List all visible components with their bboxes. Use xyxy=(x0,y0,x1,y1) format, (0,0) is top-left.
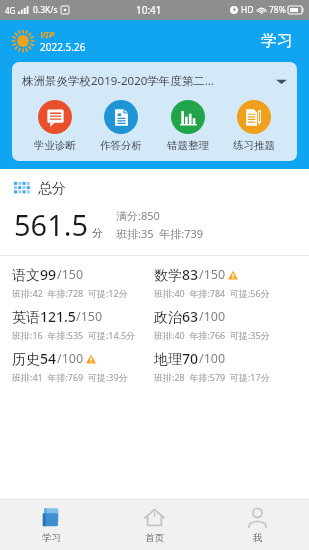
button[interactable]: 学习 xyxy=(0,500,103,550)
staticText: 561.5 xyxy=(14,205,89,244)
staticText: /150 xyxy=(57,266,84,283)
button[interactable]: 地理70 xyxy=(154,349,297,383)
staticText: VIP xyxy=(40,28,55,40)
staticText: 10:41 xyxy=(136,3,162,17)
button[interactable]: 数学83 xyxy=(154,265,297,299)
staticText: 班排:28 年排:579 可提:17分 xyxy=(154,371,270,383)
button[interactable]: 历史54 xyxy=(12,349,154,383)
button[interactable]: 学业诊断 xyxy=(31,100,79,152)
button[interactable]: 作答分析 xyxy=(97,100,145,152)
staticText: 班排:16 年排:535 可提:14.5分 xyxy=(12,329,136,341)
staticText: 班排:42 年排:728 可提:12分 xyxy=(12,287,128,299)
staticText: 班排:35 年排:739 xyxy=(116,226,204,241)
button[interactable]: 练习推题 xyxy=(230,100,278,152)
staticText: 满分:850 xyxy=(116,208,160,223)
staticText: 0.3K/s xyxy=(33,4,58,16)
staticText: 政治63 xyxy=(154,307,199,326)
staticText: 历史54 xyxy=(12,349,57,368)
staticText: /100 xyxy=(57,350,84,367)
staticText: 语文99 xyxy=(12,265,57,284)
staticText: /100 xyxy=(199,308,226,325)
staticText: 总分 xyxy=(38,180,66,198)
staticText: 分 xyxy=(92,226,103,240)
staticText: 学习 xyxy=(261,31,293,51)
staticText: /100 xyxy=(199,350,226,367)
button[interactable]: 错题整理 xyxy=(164,100,212,152)
button[interactable]: 我 xyxy=(206,500,309,550)
staticText: 错题整理 xyxy=(167,139,209,152)
staticText: HD xyxy=(241,4,254,16)
staticText: 地理70 xyxy=(154,349,199,368)
staticText: 练习推题 xyxy=(233,139,275,152)
staticText: 78% xyxy=(269,4,286,16)
staticText: 作答分析 xyxy=(100,139,142,152)
button[interactable]: 政治63 xyxy=(154,307,297,341)
staticText: /150 xyxy=(76,308,103,325)
button[interactable]: 首页 xyxy=(103,500,206,550)
staticText: 我 xyxy=(253,532,263,544)
staticText: 首页 xyxy=(145,532,164,544)
staticText: 班排:41 年排:769 可提:39分 xyxy=(12,371,128,383)
staticText: 株洲景炎学校2019-2020学年度第二… xyxy=(22,73,214,89)
button[interactable]: VIP xyxy=(12,28,86,54)
staticText: 学业诊断 xyxy=(34,139,76,152)
staticText: 英语121.5 xyxy=(12,307,76,326)
staticText: 2022.5.26 xyxy=(40,40,86,54)
button[interactable]: 学习 xyxy=(257,27,297,55)
staticText: 学习 xyxy=(42,532,61,544)
button[interactable]: 语文99 xyxy=(12,265,154,299)
staticText: /150 xyxy=(199,266,226,283)
staticText: 数学83 xyxy=(154,265,199,284)
staticText: 班排:40 年排:784 可提:56分 xyxy=(154,287,270,299)
button[interactable]: 英语121.5 xyxy=(12,307,154,341)
staticText: 班排:40 年排:766 可提:35分 xyxy=(154,329,270,341)
button[interactable]: 株洲景炎学校2019-2020学年度第二… xyxy=(12,62,297,100)
staticText: 4G xyxy=(5,5,16,16)
